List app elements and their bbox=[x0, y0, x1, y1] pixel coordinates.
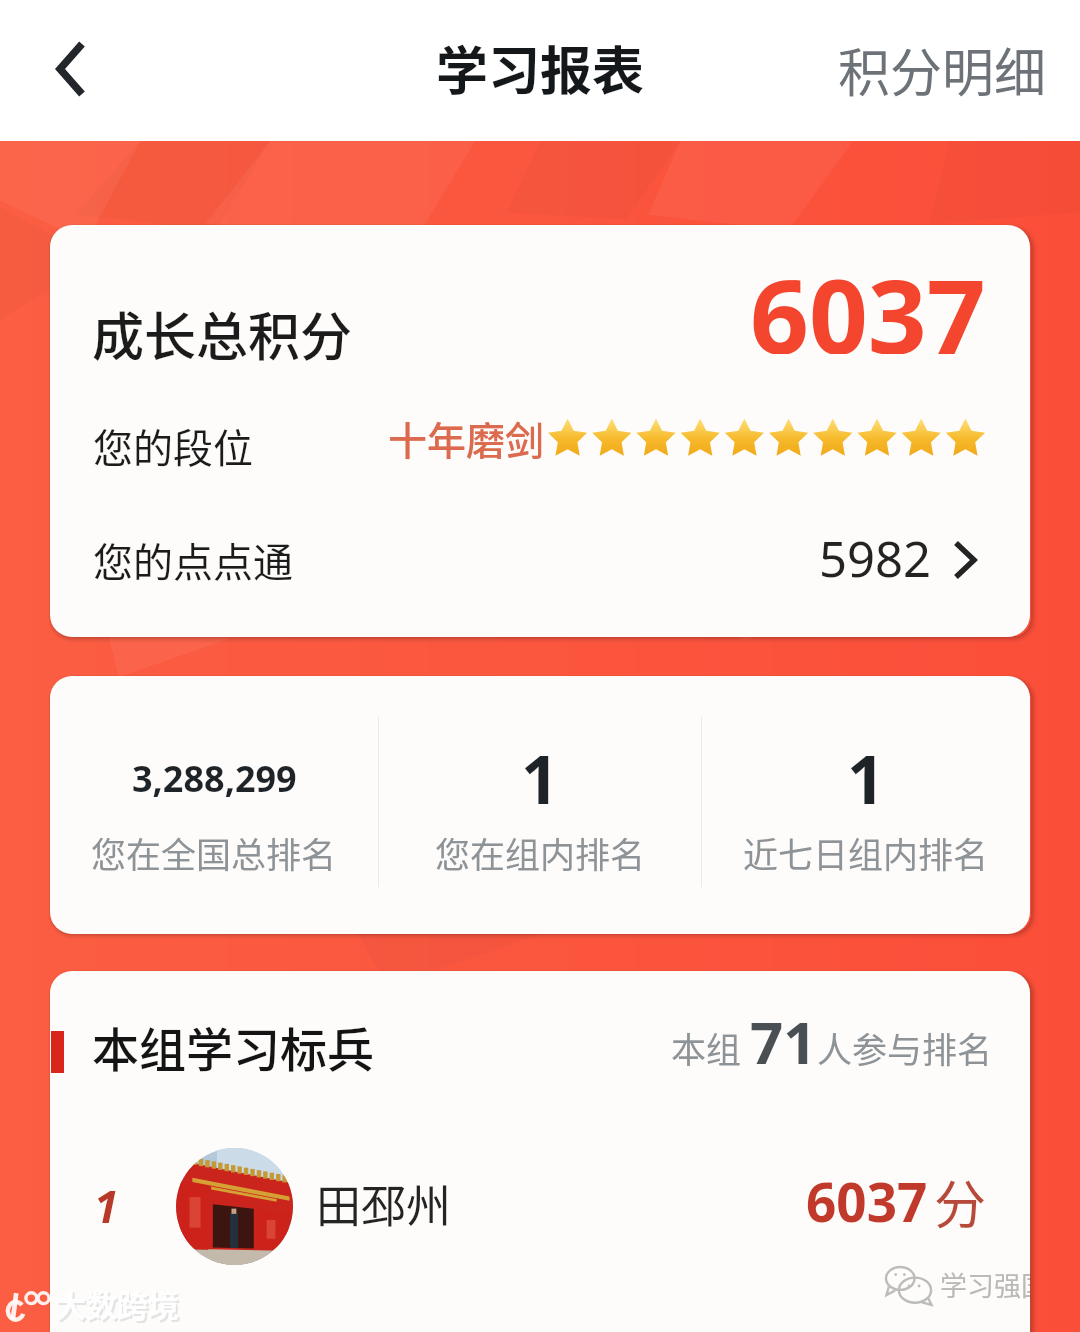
staticText: 学习报表 bbox=[436, 30, 645, 105]
staticText: 3,288,299 bbox=[132, 754, 297, 803]
staticText: 1 bbox=[847, 733, 885, 823]
button[interactable]: 1 bbox=[50, 1136, 1030, 1276]
button[interactable]: 1 bbox=[706, 676, 1026, 934]
staticText: 本组学习标兵 bbox=[92, 1012, 374, 1080]
button[interactable]: 3,288,299 bbox=[54, 676, 374, 934]
staticText: 您的段位 bbox=[93, 417, 253, 475]
staticText: 近七日组内排名 bbox=[743, 827, 989, 878]
staticText: 您在组内排名 bbox=[435, 827, 646, 878]
button[interactable]: 1 bbox=[380, 676, 700, 934]
staticText: 田邳州 bbox=[316, 1171, 452, 1236]
staticText: 学习强国 bbox=[940, 1265, 1030, 1304]
button[interactable]: 您的点点通 bbox=[50, 509, 1030, 609]
staticText: 6037 bbox=[806, 1165, 928, 1237]
staticText: 1 bbox=[94, 1176, 119, 1236]
staticText: 您的点点通 bbox=[93, 531, 293, 589]
staticText: 十年磨剑 bbox=[388, 410, 545, 466]
staticText: 人参与排名 bbox=[817, 1022, 993, 1073]
staticText: 6037 bbox=[750, 244, 986, 354]
staticText: 1 bbox=[521, 733, 559, 823]
staticText: 积分明细 bbox=[838, 32, 1047, 107]
staticText: 本组 bbox=[671, 1022, 742, 1073]
button[interactable]: Back bbox=[26, 24, 116, 114]
staticText: 您在全国总排名 bbox=[91, 827, 337, 878]
staticText: 5982 bbox=[819, 525, 932, 592]
staticText: 大数跨境 bbox=[57, 1283, 181, 1328]
staticText: 71 bbox=[750, 1002, 817, 1081]
button[interactable]: 积分明细 bbox=[818, 17, 1067, 124]
staticText: 分 bbox=[934, 1164, 987, 1239]
staticText: 大数跨境 bbox=[55, 1281, 179, 1326]
staticText: 成长总积分 bbox=[92, 296, 353, 371]
